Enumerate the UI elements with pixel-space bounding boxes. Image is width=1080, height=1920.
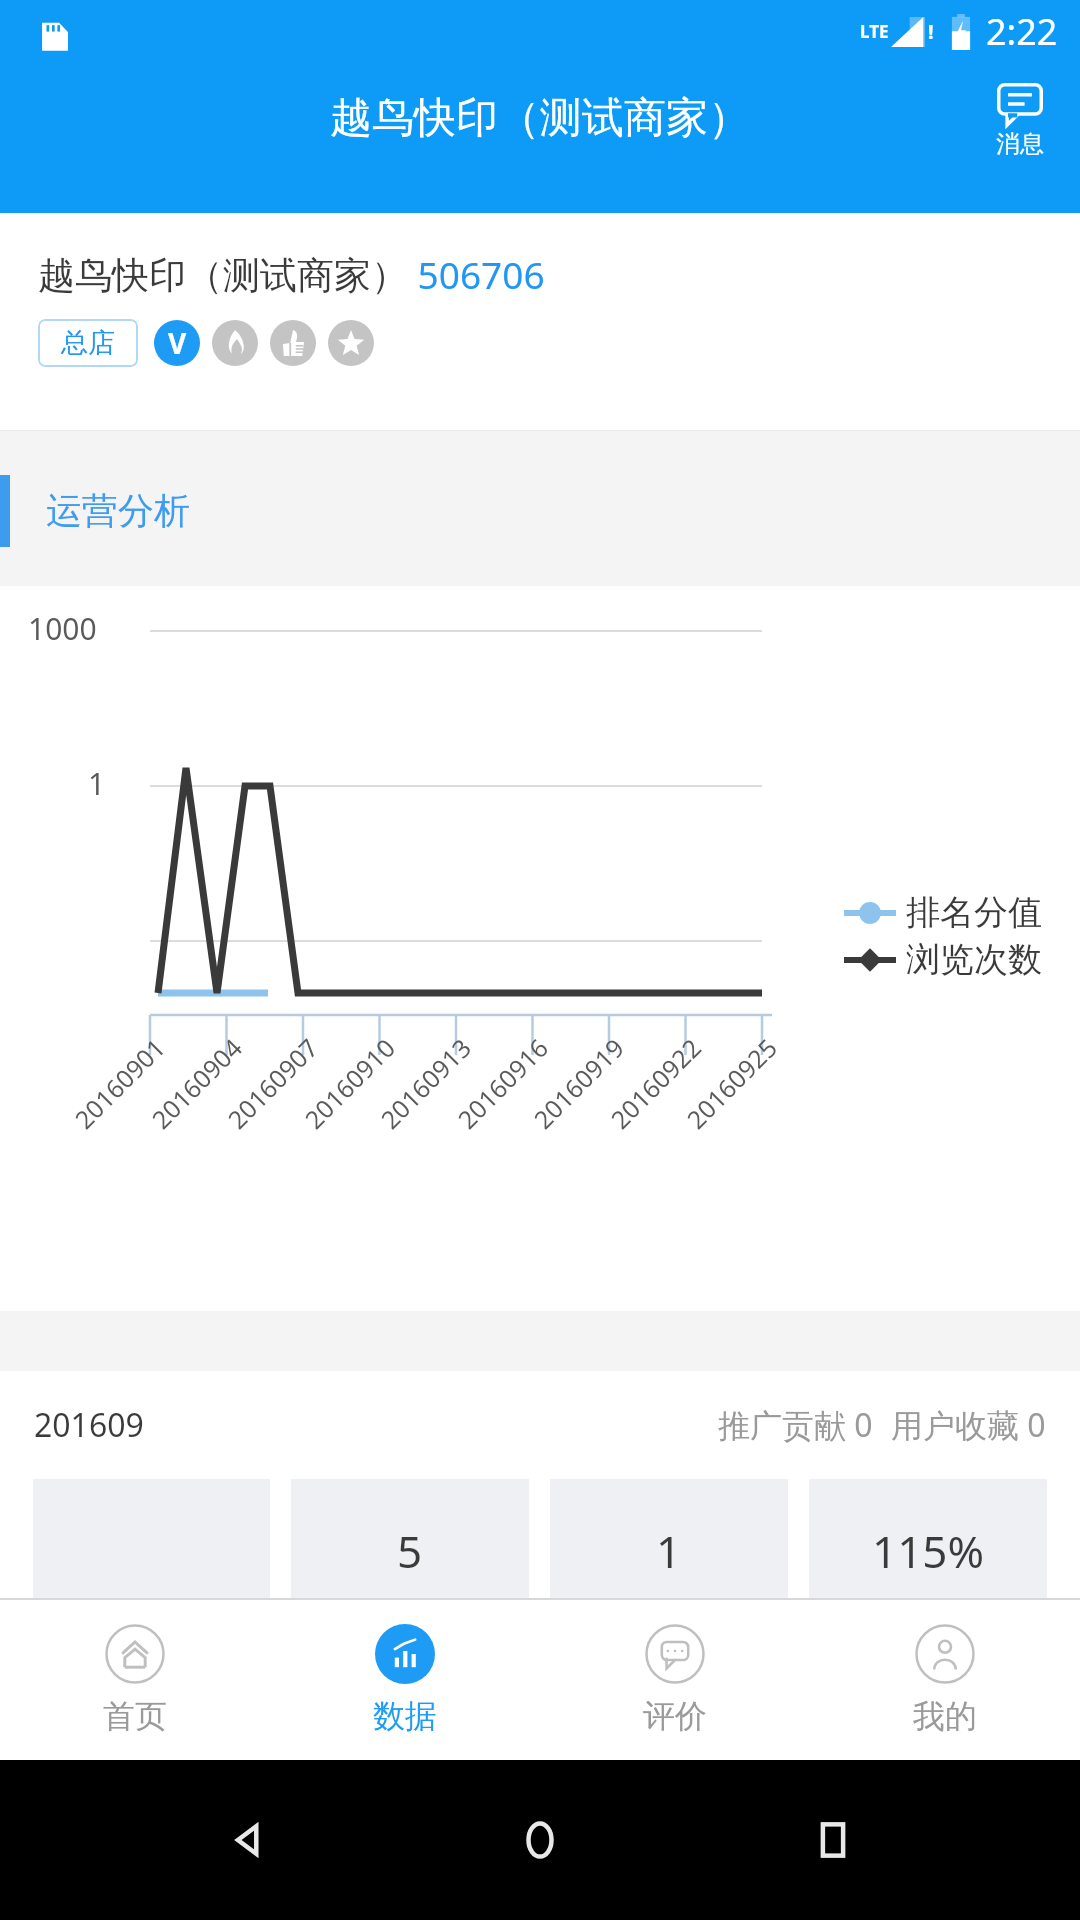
staticText: 20160919 xyxy=(526,1030,631,1136)
staticText: 115% xyxy=(872,1521,985,1581)
staticText: 1 xyxy=(656,1521,682,1581)
staticText: 数据 xyxy=(373,1696,437,1736)
button[interactable]: 消息 xyxy=(990,77,1050,165)
staticText: 点评次数 xyxy=(605,1603,733,1643)
staticText: 浏览次数 xyxy=(906,938,1042,981)
button[interactable]: 5 xyxy=(291,1479,529,1659)
staticText: 5 xyxy=(397,1521,423,1581)
button[interactable]: 115% xyxy=(809,1479,1047,1659)
staticText: 好评率 xyxy=(880,1603,976,1643)
staticText: 越鸟快印（测试商家） xyxy=(330,92,750,145)
staticText: 评价 xyxy=(643,1696,707,1736)
staticText: 2:22 xyxy=(986,7,1058,56)
staticText: 20160925 xyxy=(679,1030,784,1136)
staticText: 点评得分 xyxy=(346,1603,474,1643)
button[interactable]: 评价 xyxy=(540,1600,810,1760)
staticText: 用户收藏 0 xyxy=(891,1403,1046,1447)
staticText: 1000 xyxy=(28,608,97,649)
staticText: 我的 xyxy=(913,1696,977,1736)
staticText: 20160922 xyxy=(603,1030,708,1136)
button[interactable]: 首页 xyxy=(0,1600,270,1760)
button[interactable]: 我的 xyxy=(810,1600,1080,1760)
staticText: 20160913 xyxy=(373,1030,478,1136)
staticText: 20160904 xyxy=(144,1030,249,1136)
staticText: 排名分值 xyxy=(906,891,1042,934)
button[interactable]: 总店 xyxy=(38,319,138,367)
staticText: 20160901 xyxy=(67,1030,172,1136)
button[interactable]: Back xyxy=(203,1795,293,1885)
staticText: V xyxy=(168,324,187,362)
staticText: 20160916 xyxy=(450,1030,555,1136)
staticText: LTE xyxy=(860,20,889,43)
button[interactable]: 1 xyxy=(550,1479,788,1659)
staticText: 越鸟快印（测试商家） xyxy=(38,252,408,299)
button[interactable]: 数据 xyxy=(270,1600,540,1760)
staticText: 506706 xyxy=(408,249,545,299)
button[interactable]: Recents xyxy=(788,1795,878,1885)
staticText: ! xyxy=(928,18,934,45)
staticText: 首页 xyxy=(103,1696,167,1736)
button[interactable]: Home xyxy=(495,1795,585,1885)
staticText: 20160910 xyxy=(297,1030,402,1136)
staticText: 运营分析 xyxy=(46,488,190,533)
staticText: 201609 xyxy=(34,1403,144,1447)
staticText: 1 xyxy=(88,763,106,804)
staticText: 总店 xyxy=(61,326,115,360)
staticText: 消息 xyxy=(996,129,1044,159)
button[interactable] xyxy=(33,1479,270,1659)
staticText: 20160907 xyxy=(220,1030,325,1136)
staticText: 推广贡献 0 xyxy=(718,1403,873,1447)
